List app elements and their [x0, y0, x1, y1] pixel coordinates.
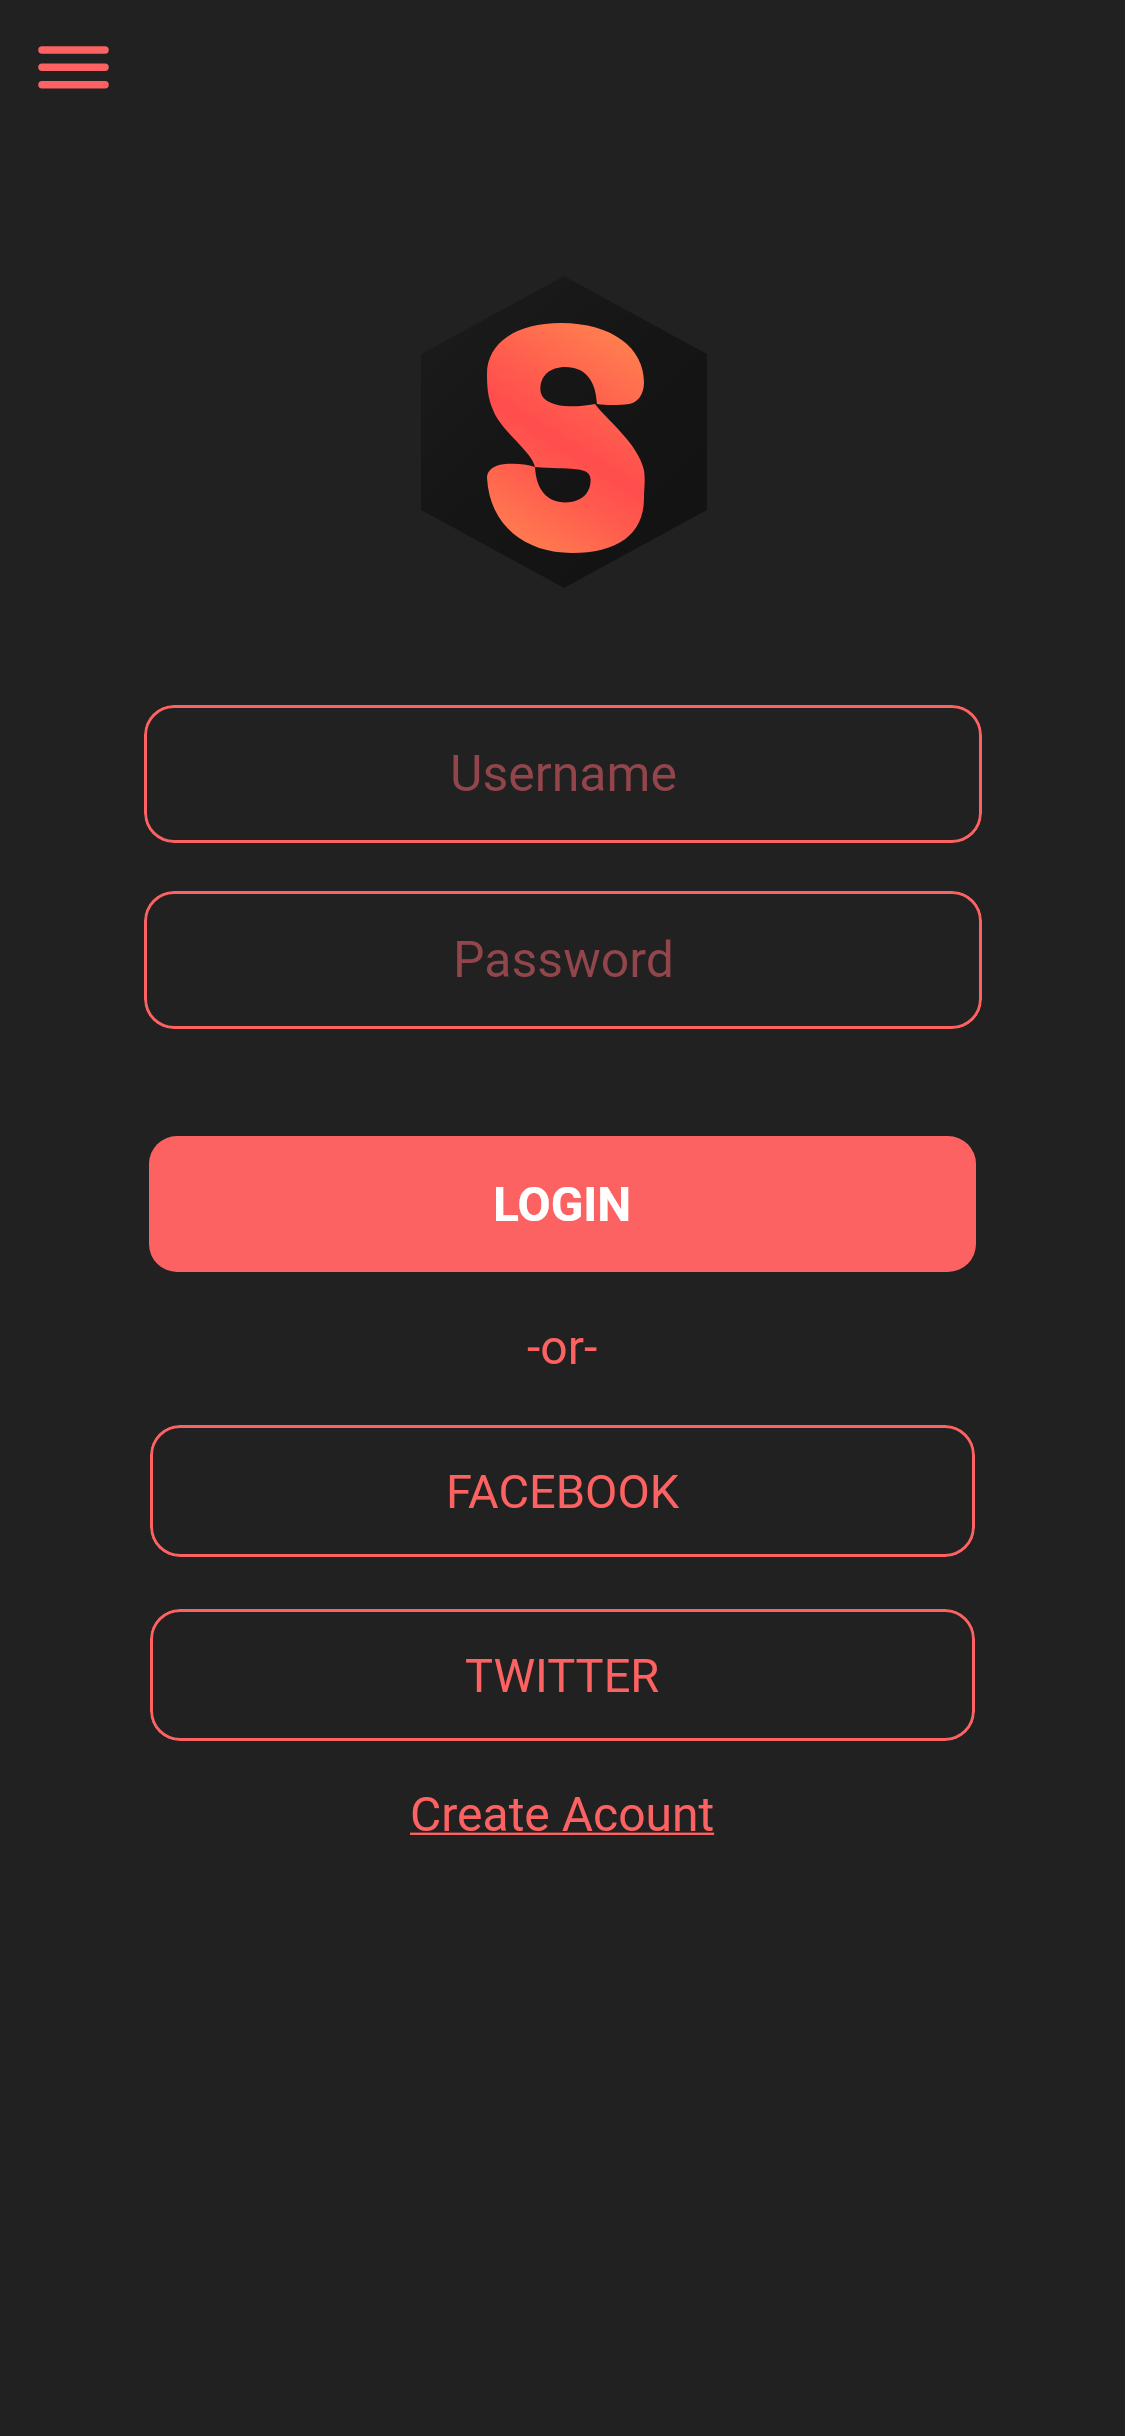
- button[interactable]: TWITTER: [150, 1609, 975, 1741]
- staticText: -or-: [527, 1319, 598, 1375]
- staticText: TWITTER: [465, 1648, 660, 1703]
- staticText: LOGIN: [493, 1176, 632, 1232]
- staticText: FACEBOOK: [446, 1464, 680, 1519]
- button[interactable]: Create Acount: [400, 1782, 725, 1846]
- staticText: Username: [450, 745, 677, 804]
- staticText: Password: [453, 931, 674, 990]
- button[interactable]: Password: [144, 891, 982, 1029]
- staticText: Create Acount: [410, 1786, 715, 1842]
- button[interactable]: Menu: [20, 26, 126, 104]
- button[interactable]: FACEBOOK: [150, 1425, 975, 1557]
- button[interactable]: LOGIN: [149, 1136, 976, 1272]
- button[interactable]: Username: [144, 705, 982, 843]
